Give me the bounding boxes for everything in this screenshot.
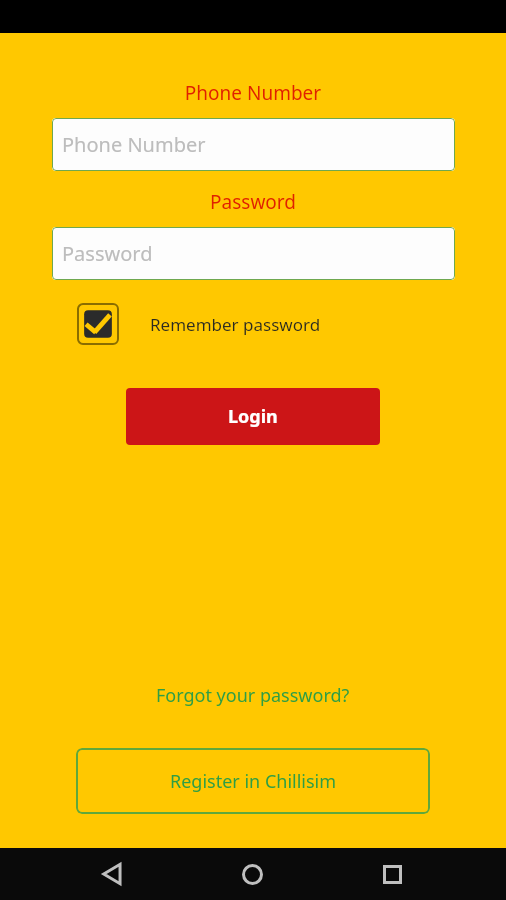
staticText: Remember password	[150, 313, 321, 336]
staticText: Forgot your password?	[156, 683, 350, 708]
button[interactable]: Remember password checkbox	[0, 303, 506, 345]
button[interactable]: Password	[52, 227, 455, 280]
button[interactable]: Forgot your password?	[146, 679, 360, 712]
button[interactable]: Phone Number	[52, 118, 455, 171]
button[interactable]: Back	[87, 848, 139, 900]
staticText: Password	[62, 240, 153, 267]
staticText: Login	[228, 404, 278, 429]
button[interactable]: Home	[226, 848, 278, 900]
other: Remember password checkbox	[77, 303, 119, 345]
button[interactable]: Register in Chillisim	[76, 748, 430, 814]
staticText: Phone Number	[0, 80, 506, 106]
staticText: Register in Chillisim	[170, 769, 337, 794]
button[interactable]: Login	[126, 388, 380, 445]
staticText: Password	[0, 189, 506, 215]
staticText: Phone Number	[62, 131, 206, 158]
button[interactable]: Recent apps	[366, 848, 418, 900]
